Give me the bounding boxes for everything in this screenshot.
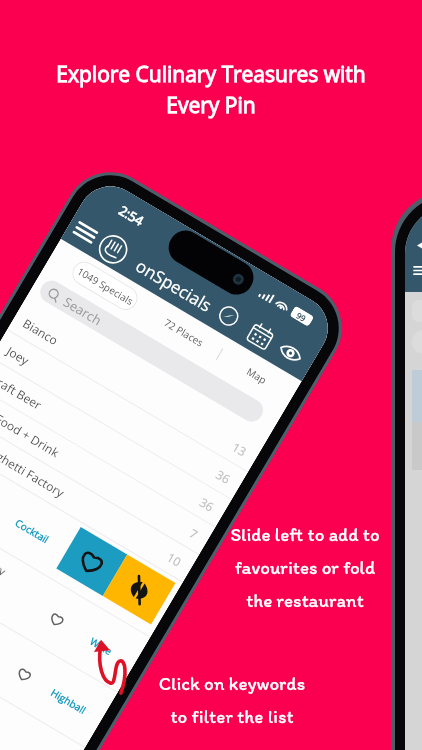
staticText: onSpecials xyxy=(132,254,217,317)
staticText: Explore Culinary Treasures with Every Pi… xyxy=(16,60,406,119)
button[interactable]: Explore xyxy=(211,298,247,334)
staticText: Map xyxy=(244,364,269,387)
button[interactable]: Map xyxy=(214,344,299,407)
button[interactable]: The Spaghetti Factory xyxy=(0,495,150,693)
button[interactable]: 72 Places xyxy=(142,301,226,364)
staticText: Wine xyxy=(75,627,127,665)
staticText: 99 xyxy=(294,309,309,324)
button[interactable]: Craft Beer xyxy=(0,357,231,528)
button[interactable]: Search xyxy=(36,276,267,426)
button[interactable]: Calendar xyxy=(243,317,278,353)
staticText: Cocktail xyxy=(6,512,58,550)
staticText: The Spaghetti Factory xyxy=(0,425,67,500)
staticText: Craft Beer xyxy=(0,370,45,413)
button[interactable]: Add to favourites xyxy=(56,527,127,596)
staticText: Search xyxy=(60,293,106,330)
staticText: 7 xyxy=(187,525,201,542)
staticText: 2:54 xyxy=(116,201,147,230)
staticText: 10 xyxy=(164,549,184,570)
staticText: Click on keywords to filter the list xyxy=(134,672,330,728)
button[interactable]: onSpecials home xyxy=(92,228,133,269)
button[interactable]: Red Food + Drink xyxy=(0,385,215,555)
button[interactable]: Saved views xyxy=(273,335,309,370)
staticText: 36 xyxy=(213,466,233,487)
button[interactable]: Joey xyxy=(0,330,248,500)
staticText: 72 Places xyxy=(162,315,207,350)
staticText: The Spaghetti Factory xyxy=(0,509,9,579)
staticText: Slide left to add to favourites or fold … xyxy=(212,523,398,612)
button[interactable]: Fold restaurant xyxy=(103,555,175,624)
staticText: 36 xyxy=(197,494,217,515)
staticText: Bianco xyxy=(20,315,61,348)
button[interactable]: 1049 Specials xyxy=(68,257,142,314)
staticText: 1049 Specials xyxy=(75,264,136,308)
button[interactable]: Mr Johns Bar xyxy=(0,550,118,748)
staticText: Joey xyxy=(4,342,33,368)
button[interactable]: Bianco xyxy=(7,302,264,472)
staticText: Red Food + Drink xyxy=(0,397,62,460)
button[interactable]: The Spaghetti Factory xyxy=(0,413,199,583)
button[interactable]: The Spaghetti Factory xyxy=(0,440,183,638)
staticText: 13 xyxy=(229,439,250,459)
staticText: Highball xyxy=(42,682,94,720)
button[interactable]: Open menu xyxy=(68,215,103,250)
